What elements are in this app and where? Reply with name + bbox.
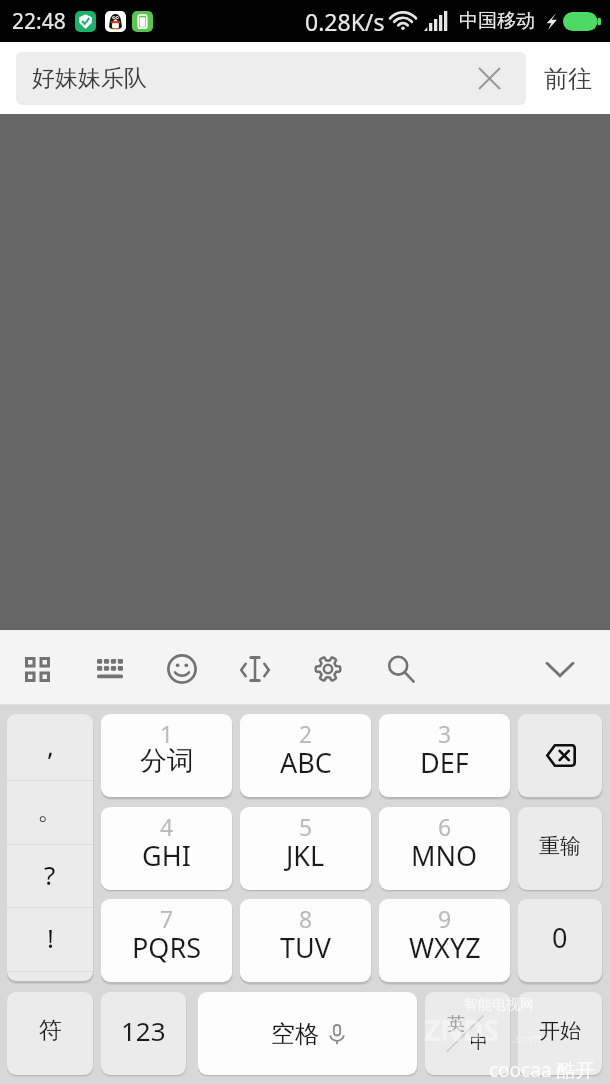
staticText: 英 <box>447 1013 465 1036</box>
button[interactable]: 开始 <box>518 992 602 1075</box>
staticText: 8 <box>299 903 313 934</box>
button[interactable]: Clear text <box>452 52 526 105</box>
staticText: ZNDS <box>424 1011 499 1049</box>
staticText: coocaa 酷开 <box>489 1057 595 1083</box>
button[interactable]: 2 <box>240 714 371 797</box>
staticText: 9 <box>438 903 452 934</box>
button[interactable]: 6 <box>379 807 510 890</box>
staticText: 分词 <box>140 744 194 778</box>
staticText: 前往 <box>544 64 592 94</box>
button[interactable]: Emoji <box>156 643 208 695</box>
button[interactable]: 4 <box>101 807 232 890</box>
button[interactable]: Backspace <box>518 714 602 797</box>
staticText: 123 <box>121 1013 166 1048</box>
staticText: 7 <box>160 903 174 934</box>
staticText: MNO <box>411 837 478 874</box>
button[interactable]: Switch language <box>425 992 510 1075</box>
staticText: 中国移动 <box>459 9 535 33</box>
staticText: 重输 <box>539 833 581 859</box>
button[interactable]: 3 <box>379 714 510 797</box>
button[interactable]: 。 <box>7 781 93 844</box>
staticText: GHI <box>142 837 191 874</box>
staticText: 3 <box>438 718 452 749</box>
button[interactable]: , <box>7 714 93 780</box>
button[interactable]: 空格 <box>198 992 417 1075</box>
staticText: , <box>47 728 54 763</box>
button[interactable]: 符 <box>7 992 93 1075</box>
button[interactable]: Settings <box>302 643 354 695</box>
staticText: ? <box>44 857 56 892</box>
button[interactable]: 123 <box>101 992 186 1075</box>
button[interactable]: 0 <box>518 899 602 982</box>
button[interactable]: Keyboard layouts <box>11 643 63 695</box>
button[interactable]: Move cursor <box>229 643 281 695</box>
staticText: 。 <box>37 794 63 827</box>
staticText: 好妹妹乐队 <box>32 64 452 93</box>
button[interactable]: 前往 <box>526 52 610 105</box>
staticText: 4 <box>160 811 174 842</box>
staticText: 空格 <box>271 1019 319 1049</box>
button[interactable]: 1 <box>101 714 232 797</box>
staticText: 22:48 <box>12 7 66 36</box>
staticText: 0 <box>552 919 568 956</box>
button[interactable]: Keyboard mode <box>84 643 136 695</box>
button[interactable]: ? <box>7 845 93 907</box>
staticText: JKL <box>286 837 325 874</box>
staticText: 2 <box>299 718 313 749</box>
staticText: .com <box>512 1029 542 1047</box>
staticText: 0.28K/s <box>305 6 385 37</box>
button[interactable]: Search <box>375 643 427 695</box>
staticText: ABC <box>280 744 332 781</box>
staticText: 符 <box>39 1016 62 1045</box>
button[interactable]: 重输 <box>518 807 602 890</box>
staticText: WXYZ <box>409 929 481 966</box>
staticText: 智能电视网 <box>464 996 534 1014</box>
staticText: DEF <box>420 744 469 781</box>
staticText: 5 <box>299 811 313 842</box>
staticText: 1 <box>160 718 174 749</box>
button[interactable]: 8 <box>240 899 371 982</box>
button[interactable]: 7 <box>101 899 232 982</box>
staticText: 6 <box>438 811 452 842</box>
button[interactable]: 好妹妹乐队 <box>16 52 526 105</box>
button[interactable]: 5 <box>240 807 371 890</box>
staticText: ! <box>47 920 54 955</box>
button[interactable]: Hide keyboard <box>534 643 586 695</box>
staticText: 中 <box>470 1031 488 1054</box>
button[interactable]: 9 <box>379 899 510 982</box>
staticText: TUV <box>280 929 331 966</box>
staticText: PQRS <box>132 929 202 966</box>
staticText: 开始 <box>539 1018 581 1044</box>
button[interactable]: ! <box>7 908 93 971</box>
